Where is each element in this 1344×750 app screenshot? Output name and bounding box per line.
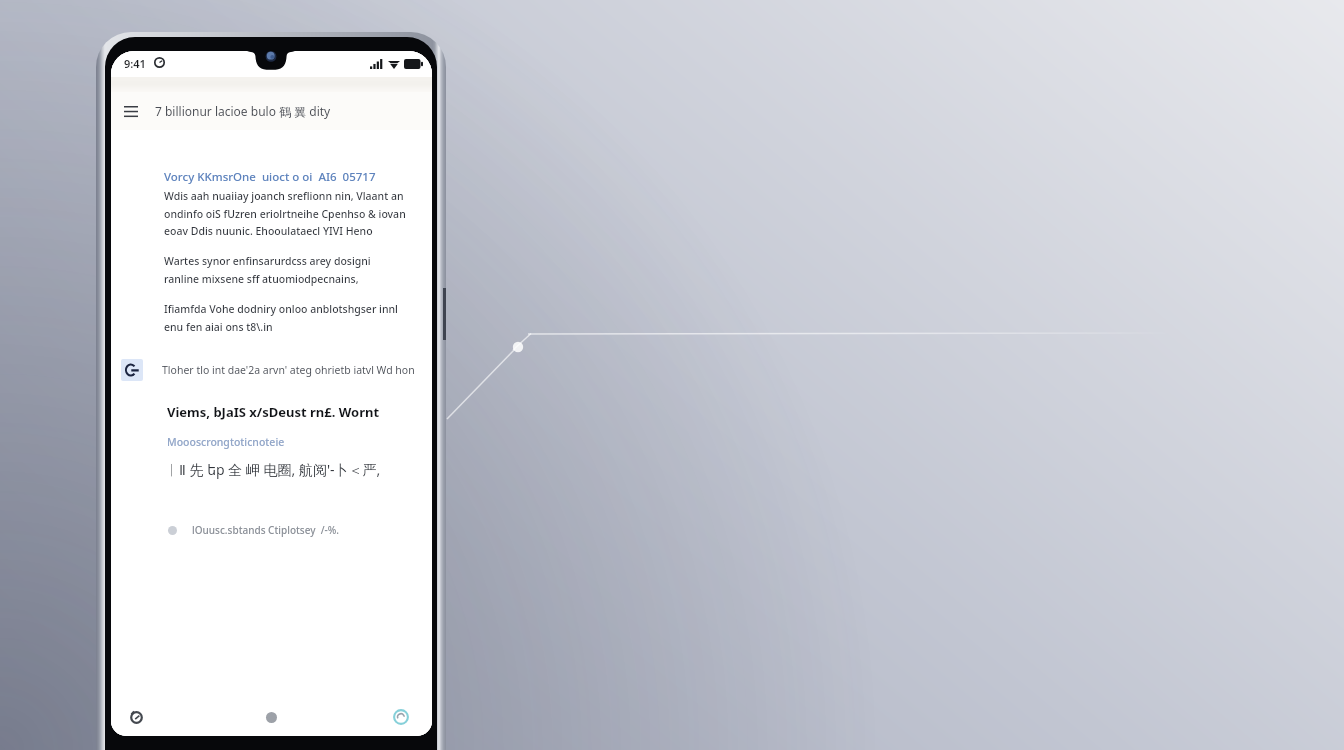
button[interactable]: Sign out [111, 359, 432, 381]
staticText: Moooscrongtoticnoteie [167, 435, 285, 449]
staticText: Viems, bJaIS x/sDeust rn£. Wornt [167, 403, 380, 421]
button[interactable]: Home [260, 706, 282, 728]
staticText: ᛁ Ⅱ 先 եр 全 岬 电圈, 航阅'-卜＜严, [167, 460, 381, 479]
button[interactable]: Moooscrongtoticnoteie [167, 435, 285, 449]
button[interactable]: Menu [118, 98, 144, 124]
button[interactable]: Assistant [388, 704, 414, 730]
staticText: lOuusc.sbtands Ctiplotsey /-%. [192, 523, 340, 537]
staticText: Tloher tlo int dae'2a arvn' ateg ohrietb… [162, 363, 415, 377]
staticText: Wartes synor enfinsarurdcss arey dosigni… [164, 254, 371, 286]
button[interactable]: 7 billionur lacioe bulo 鶴 翼 dity [144, 103, 331, 119]
staticText: Vorcy KKmsrOne uioct o oi AI6 05717 [164, 169, 376, 185]
staticText: Wdis aah nuaiiay joanch sreflionn nin, V… [164, 189, 406, 238]
staticText: Ifiamfda Vohe dodniry onloo anblotshgser… [164, 302, 398, 334]
button[interactable]: Sign out [121, 359, 143, 381]
button[interactable]: Back [124, 705, 148, 729]
staticText: 9:41 [124, 56, 146, 71]
